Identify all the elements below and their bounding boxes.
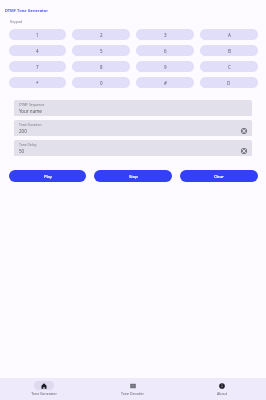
staticText: 3 — [164, 32, 167, 38]
button[interactable]: # — [136, 77, 194, 88]
button[interactable]: 0 — [72, 77, 130, 88]
button[interactable]: 6 — [136, 45, 194, 56]
button[interactable]: Clear text — [239, 146, 248, 155]
button[interactable]: 7 — [9, 61, 66, 72]
staticText: Tone Delay — [19, 142, 37, 147]
staticText: B — [228, 48, 231, 54]
staticText: Tone Decoder — [121, 391, 144, 396]
staticText: A — [228, 32, 231, 38]
staticText: 4 — [36, 48, 39, 54]
button[interactable]: D — [200, 77, 258, 88]
staticText: 5 — [100, 48, 103, 54]
button[interactable]: Stop — [94, 170, 172, 182]
button[interactable]: Play — [9, 170, 86, 182]
button[interactable]: 3 — [136, 29, 194, 40]
staticText: 200 — [19, 128, 27, 134]
button[interactable]: Tone Generator — [0, 378, 88, 400]
button[interactable]: DTMF Sequence — [14, 100, 252, 116]
button[interactable]: Clear text — [239, 126, 248, 135]
button[interactable]: A — [200, 29, 258, 40]
staticText: C — [228, 64, 231, 70]
staticText: Keypad — [10, 19, 23, 24]
button[interactable]: C — [200, 61, 258, 72]
staticText: Clear — [214, 174, 224, 179]
staticText: 50 — [19, 148, 25, 154]
staticText: DTMF Sequence — [19, 102, 45, 107]
staticText: Tone Duration — [19, 122, 42, 127]
staticText: Stop — [129, 174, 138, 179]
staticText: DTMF Tone Generator — [5, 8, 49, 13]
staticText: Play — [44, 174, 52, 179]
button[interactable]: * — [9, 77, 66, 88]
button[interactable]: 9 — [136, 61, 194, 72]
staticText: 2 — [100, 32, 103, 38]
staticText: 9 — [164, 64, 167, 70]
button[interactable]: Tone Decoder — [88, 378, 177, 400]
button[interactable]: Tone Delay — [14, 140, 252, 156]
staticText: Tone Generator — [31, 391, 57, 396]
button[interactable]: 5 — [72, 45, 130, 56]
staticText: Your name — [19, 108, 42, 114]
button[interactable]: 8 — [72, 61, 130, 72]
staticText: * — [36, 80, 39, 86]
staticText: 6 — [164, 48, 167, 54]
button[interactable]: 1 — [9, 29, 66, 40]
button[interactable]: 2 — [72, 29, 130, 40]
staticText: 7 — [36, 64, 39, 70]
staticText: D — [227, 80, 231, 86]
button[interactable]: Clear — [180, 170, 258, 182]
staticText: About — [217, 391, 227, 396]
button[interactable]: Tone Duration — [14, 120, 252, 136]
staticText: 1 — [36, 32, 39, 38]
staticText: # — [164, 80, 167, 86]
button[interactable]: 4 — [9, 45, 66, 56]
staticText: 0 — [100, 80, 103, 86]
staticText: 8 — [100, 64, 103, 70]
button[interactable]: B — [200, 45, 258, 56]
button[interactable]: About — [177, 378, 266, 400]
